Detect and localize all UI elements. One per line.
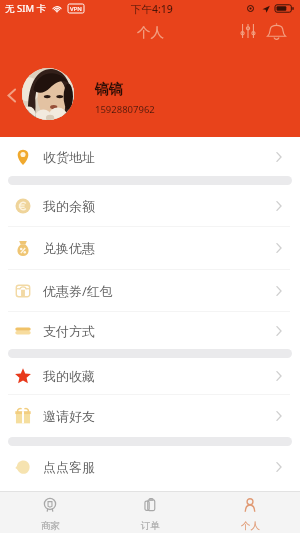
staticText: 点点客服 [43,459,95,475]
staticText: VPN [70,5,82,13]
button[interactable]: 点点客服 [0,446,300,488]
staticText: 镐镐 [95,81,123,99]
button[interactable]: 兑换优惠 [0,227,300,269]
button[interactable]: 商家 [0,492,100,533]
button[interactable]: 收货地址 [0,137,300,176]
button[interactable]: 订单 [100,492,200,533]
staticText: 无 SIM 卡 [5,2,46,15]
staticText: 下午4:19 [131,2,173,16]
staticText: 订单 [141,520,160,532]
button[interactable]: 邀请好友 [0,395,300,437]
button[interactable]: Settings [236,19,260,43]
staticText: 支付方式 [43,323,95,339]
staticText: 15928807962 [95,103,155,116]
staticText: 我的收藏 [43,368,95,384]
button[interactable]: Back [2,86,20,104]
staticText: 优惠券/红包 [43,282,113,300]
button[interactable]: 优惠券/红包 [0,270,300,311]
staticText: 个人 [241,520,260,532]
staticText: 个人 [137,24,164,41]
button[interactable]: 我的余额 [0,185,300,226]
button[interactable]: Notifications [264,19,288,43]
staticText: 兑换优惠 [43,240,95,256]
staticText: 我的余额 [43,198,95,214]
button[interactable]: 个人 [200,492,300,533]
button[interactable]: 我的收藏 [0,358,300,394]
staticText: 邀请好友 [43,408,95,424]
staticText: 收货地址 [43,149,95,165]
button[interactable]: 支付方式 [0,312,300,349]
staticText: 商家 [41,520,60,532]
